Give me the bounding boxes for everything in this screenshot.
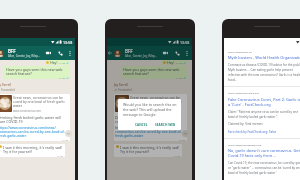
staticText: Coronavirus disease (COVID-19) advice fo… [228, 63, 300, 82]
staticText: BFF [8, 48, 16, 54]
staticText: I saw it this morning, it's really sad! … [3, 145, 64, 154]
button[interactable]: https://www.infosapiens.org [224, 143, 300, 175]
staticText: 11:37 [57, 154, 64, 157]
staticText: https://www.infosapiens.org [228, 143, 262, 146]
staticText: 11:33 [59, 76, 66, 79]
staticText: Jay Farrell [114, 83, 129, 87]
staticText: 13:58 [63, 40, 73, 45]
staticText: Drinking fresh boiled garlic water will … [0, 115, 69, 124]
staticText: 11:35 [62, 138, 69, 141]
staticText: https://www.coronavirus.com/news/coronav… [115, 125, 186, 138]
staticText: I saw it this morning, it's really sad! … [120, 145, 181, 154]
staticText: 11:35 [179, 138, 186, 141]
staticText: No, garlic doesn't cure coronavirus. Get… [228, 148, 300, 158]
staticText: Hey! [167, 60, 175, 65]
button[interactable]: Video call [46, 51, 51, 55]
staticText: 11:37 [174, 154, 181, 157]
button[interactable]: Video call [163, 51, 168, 55]
button[interactable]: Scroll to bottom [182, 130, 189, 137]
staticText: Claim: "Patients anyone virus can be cur… [228, 110, 300, 119]
staticText: www.coronavirus.com [13, 109, 41, 113]
button[interactable]: Back [108, 51, 112, 55]
staticText: Fake Coronavirus Cures, Part 2: Garlic i… [228, 97, 300, 107]
button[interactable]: Group photo [114, 50, 121, 57]
staticText: Forwarded [1, 88, 15, 92]
staticText: 11:33 [176, 76, 183, 79]
staticText: Can Covid-19, the new coronavirus, be cu… [228, 161, 300, 175]
button[interactable]: More options [69, 51, 71, 56]
staticText: SEARCH WEB [155, 123, 176, 127]
button[interactable]: https://www.factcheck.org [224, 91, 300, 134]
staticText: www.coronavirus.com [130, 109, 158, 113]
staticText: Great news, coronavirus can be cured by … [13, 95, 69, 108]
staticText: Have you guys seen this new web search f… [6, 67, 69, 76]
staticText: https://www.coronavirus.com/news/coronav… [0, 125, 69, 138]
button[interactable]: Call [175, 51, 180, 56]
staticText: CANCEL [135, 123, 148, 127]
button[interactable]: Scroll to bottom [65, 130, 72, 137]
staticText: Drinking fresh boiled garlic water will … [115, 115, 186, 124]
button[interactable]: Call [58, 51, 63, 56]
button[interactable]: SEARCH WEB [154, 122, 177, 128]
staticText: Forwarded [118, 88, 132, 92]
button[interactable]: https://www.who.int [224, 50, 300, 82]
button[interactable]: CANCEL [134, 122, 149, 128]
staticText: 13:58 [180, 40, 190, 45]
staticText: Myth busters - World Health Organization [228, 55, 300, 60]
staticText: Alice, Connie, Jay, Riley... [8, 54, 40, 58]
staticText: 11:32 [176, 61, 183, 64]
staticText: https://www.who.int [228, 50, 252, 53]
staticText: Have you guys seen this new web search f… [123, 67, 186, 76]
staticText: Would you like to search this on the web… [123, 102, 177, 117]
staticText: Claimed by: Viral memes [228, 122, 263, 126]
staticText: Jay Farrell [0, 83, 12, 87]
staticText: Alice, Connie, Jay, Riley... [125, 54, 157, 58]
button[interactable]: Group photo [0, 50, 4, 57]
staticText: Hey! [50, 60, 58, 65]
staticText: 11:32 [59, 61, 66, 64]
button[interactable]: More options [186, 51, 188, 56]
staticText: BFF [125, 48, 133, 54]
staticText: https://www.factcheck.org [228, 91, 259, 94]
staticText: Fact check by FactCheck.org: False [228, 130, 277, 134]
staticText: Great news, coronavirus can be cured by … [130, 95, 186, 108]
